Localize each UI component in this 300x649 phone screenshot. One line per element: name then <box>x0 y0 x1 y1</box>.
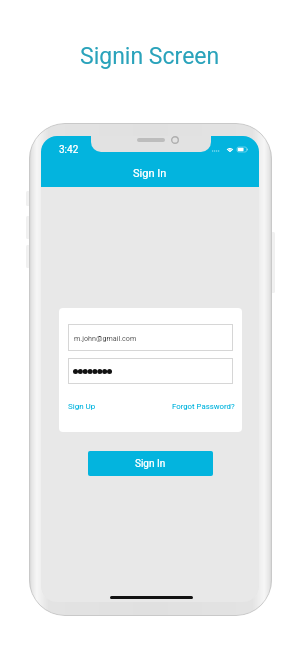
staticText: 3:42 <box>59 144 79 156</box>
button[interactable]: Sign Up <box>68 402 96 411</box>
button[interactable]: Forgot Password? <box>172 402 235 411</box>
button[interactable]: Sign In <box>88 451 213 476</box>
staticText: Signin Screen <box>80 43 220 70</box>
staticText: Sign In <box>135 458 166 470</box>
button[interactable]: m.john@gmail.com <box>68 324 233 351</box>
button[interactable] <box>68 358 233 384</box>
staticText: m.john@gmail.com <box>74 334 137 342</box>
staticText: Sign In <box>133 167 167 180</box>
